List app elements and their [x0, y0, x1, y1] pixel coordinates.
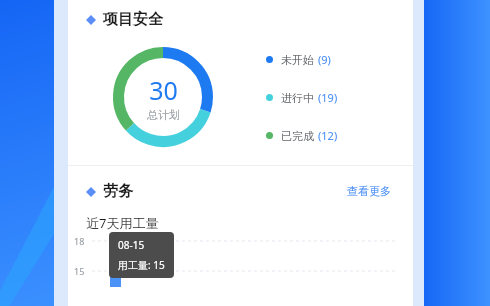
staticText: 已完成 — [281, 129, 314, 143]
staticText: 18 — [74, 235, 85, 247]
staticText: 查看更多 — [347, 184, 391, 198]
button[interactable]: 项目安全 — [86, 10, 413, 29]
staticText: 未开始 — [281, 53, 314, 67]
staticText: (9) — [318, 52, 331, 67]
staticText: 进行中 — [281, 91, 314, 105]
button[interactable]: 劳务 — [86, 182, 133, 201]
staticText: 劳务 — [103, 182, 133, 201]
staticText: (12) — [318, 128, 338, 143]
staticText: 15 — [74, 265, 85, 277]
staticText: 项目安全 — [103, 10, 163, 29]
button[interactable]: 查看更多 — [343, 180, 395, 202]
staticText: 30 — [149, 73, 178, 107]
staticText: 近7天用工量 — [86, 214, 159, 232]
staticText: 用工量: 15 — [118, 258, 165, 272]
staticText: 08-15 — [118, 238, 145, 252]
staticText: (19) — [318, 90, 338, 105]
staticText: 总计划 — [147, 108, 180, 122]
